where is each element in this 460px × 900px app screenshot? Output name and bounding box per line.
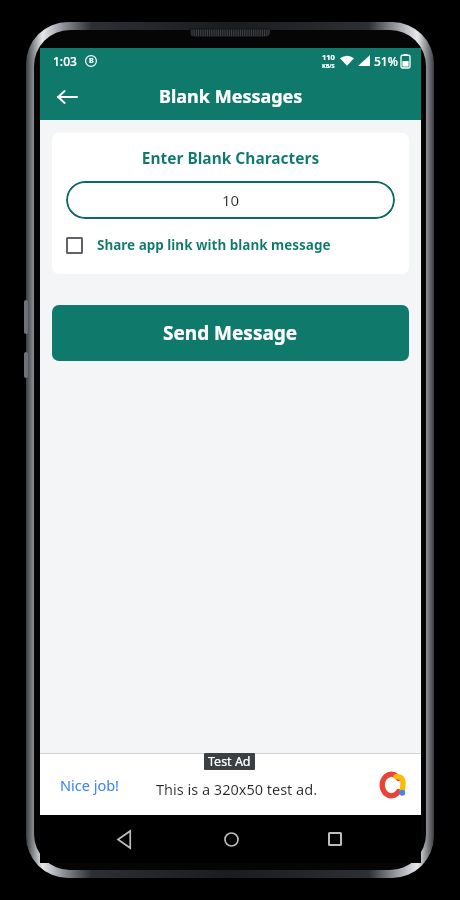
staticText: Share app link with blank message xyxy=(97,236,331,254)
staticText: Send Message xyxy=(163,320,298,346)
button[interactable]: 10 xyxy=(66,181,395,219)
button[interactable]: Nice job! xyxy=(40,754,421,815)
staticText: 110 xyxy=(322,52,335,62)
staticText: 1:03 xyxy=(53,53,77,69)
other: AdMob xyxy=(379,771,407,799)
staticText: Test Ad xyxy=(208,753,251,770)
staticText: Enter Blank Characters xyxy=(66,147,395,168)
staticText: Blank Messages xyxy=(159,84,303,109)
button[interactable]: Send Message xyxy=(52,305,409,361)
staticText: Nice job! xyxy=(60,775,120,795)
button[interactable]: Back xyxy=(107,820,145,858)
staticText: This is a 320x50 test ad. xyxy=(156,779,318,799)
button[interactable]: Share app link with blank message xyxy=(66,236,395,254)
staticText: KB/S xyxy=(322,62,335,69)
button[interactable]: Home xyxy=(212,820,250,858)
staticText: 10 xyxy=(222,190,240,210)
button[interactable]: Recent apps xyxy=(316,820,354,858)
button[interactable]: Navigate back xyxy=(46,76,88,118)
staticText: 51% xyxy=(374,53,398,69)
staticText: B xyxy=(89,56,94,66)
